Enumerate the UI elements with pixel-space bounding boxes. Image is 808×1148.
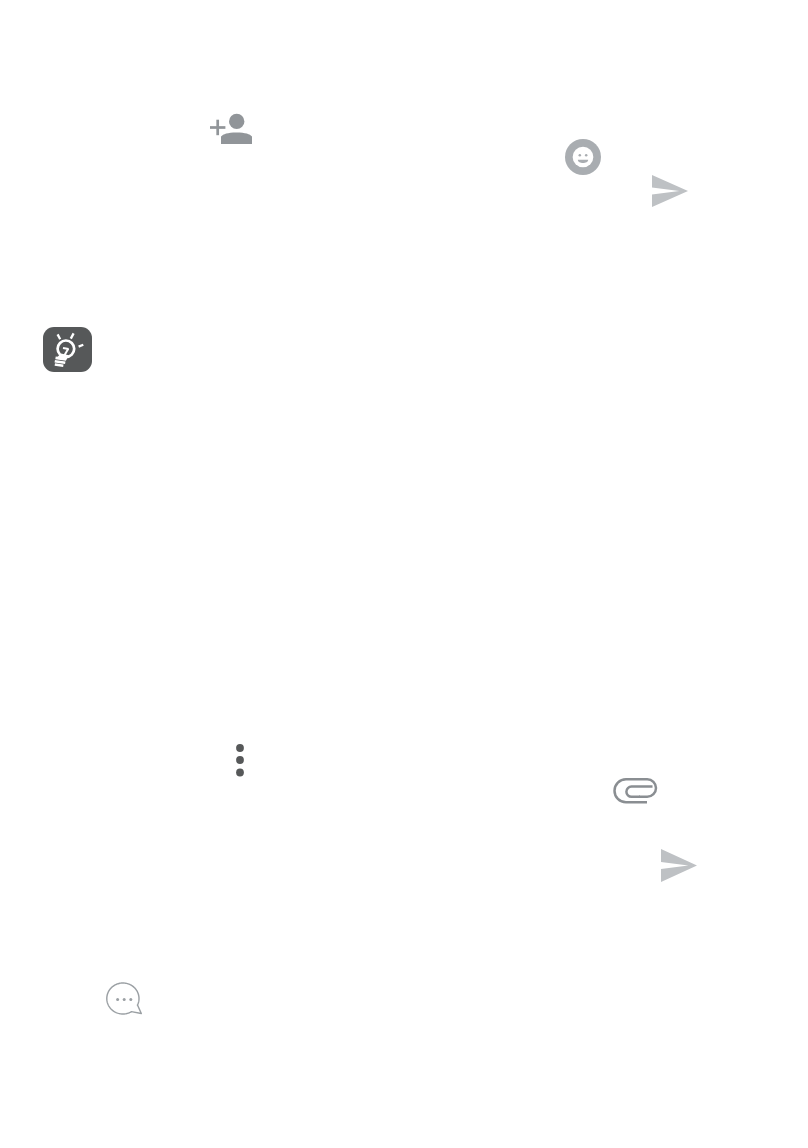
button[interactable]: Send <box>652 175 688 207</box>
button[interactable]: Tips and suggestions <box>43 327 92 372</box>
button[interactable]: Send message <box>661 849 697 882</box>
button[interactable]: Typing indicator <box>105 981 144 1018</box>
button[interactable]: Insert emoji <box>565 139 601 175</box>
button[interactable]: Attach file <box>612 777 659 805</box>
button[interactable]: Add person <box>208 111 254 146</box>
button[interactable]: More options <box>228 740 252 782</box>
